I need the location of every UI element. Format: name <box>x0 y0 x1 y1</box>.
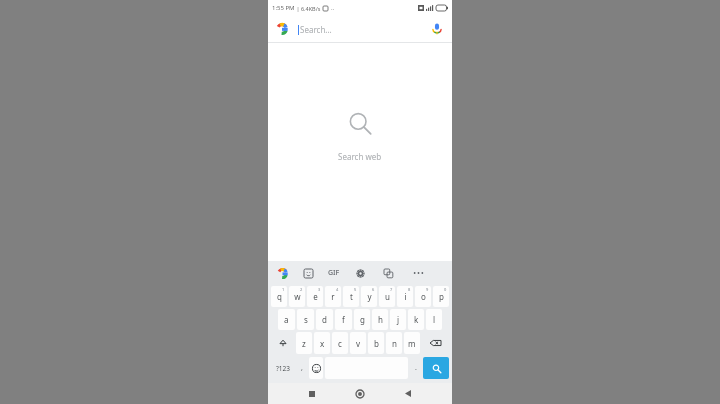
button[interactable]: t <box>343 286 359 307</box>
staticText: 2 <box>300 287 303 292</box>
button[interactable]: ?123 <box>270 356 295 380</box>
staticText: r <box>331 291 335 302</box>
button[interactable]: Settings <box>352 265 368 281</box>
staticText: Search web <box>338 151 382 162</box>
staticText: 6 <box>372 287 375 292</box>
button[interactable]: p <box>433 286 449 307</box>
staticText: 0 <box>444 287 447 292</box>
staticText: 8 <box>408 287 411 292</box>
staticText: GIF <box>328 268 340 278</box>
button[interactable]: Emoji <box>309 357 323 379</box>
staticText: Search... <box>300 24 332 35</box>
staticText: 9 <box>426 287 429 292</box>
button[interactable]: x <box>314 332 330 354</box>
button[interactable]: r <box>325 286 341 307</box>
staticText: 3 <box>318 287 321 292</box>
button[interactable]: b <box>368 332 384 354</box>
staticText: s <box>304 314 308 325</box>
button[interactable]: y <box>361 286 377 307</box>
button[interactable]: n <box>386 332 402 354</box>
staticText: m <box>408 338 416 349</box>
staticText: t <box>350 291 353 302</box>
staticText: 4 <box>336 287 339 292</box>
button[interactable]: k <box>408 309 424 330</box>
button[interactable]: j <box>390 309 406 330</box>
staticText: h <box>378 314 383 325</box>
button[interactable]: g <box>354 309 370 330</box>
button[interactable]: Voice search <box>429 21 445 37</box>
button[interactable]: o <box>415 286 431 307</box>
staticText: p <box>439 291 444 302</box>
staticText: d <box>322 314 327 325</box>
staticText: f <box>342 314 345 325</box>
button[interactable]: f <box>335 309 352 330</box>
staticText: e <box>313 291 318 302</box>
button[interactable]: Google <box>275 22 289 36</box>
button[interactable]: GIF <box>328 265 340 281</box>
button[interactable]: w <box>289 286 305 307</box>
staticText: 7 <box>390 287 393 292</box>
button[interactable]: Backspace <box>422 332 449 354</box>
staticText: v <box>356 338 361 349</box>
button[interactable]: h <box>372 309 388 330</box>
staticText: i <box>404 291 407 302</box>
button[interactable]: Shift <box>271 332 294 354</box>
button[interactable]: e <box>307 286 323 307</box>
button[interactable]: u <box>379 286 395 307</box>
button[interactable]: c <box>332 332 348 354</box>
button[interactable]: i <box>397 286 413 307</box>
staticText: .. <box>331 4 335 12</box>
button[interactable]: m <box>404 332 420 354</box>
staticText: z <box>302 338 306 349</box>
staticText: q <box>277 291 282 302</box>
staticText: 1 <box>282 287 285 292</box>
staticText: b <box>374 338 379 349</box>
staticText: | 6.4KB/s <box>295 5 321 12</box>
button[interactable]: q <box>271 286 287 307</box>
staticText: o <box>421 291 426 302</box>
button[interactable]: Home <box>349 383 371 404</box>
button[interactable]: s <box>297 309 314 330</box>
staticText: n <box>392 338 397 349</box>
button[interactable]: l <box>426 309 442 330</box>
staticText: l <box>433 314 436 325</box>
button[interactable]: z <box>296 332 312 354</box>
button[interactable]: , <box>295 356 308 380</box>
button[interactable]: a <box>278 309 295 330</box>
staticText: x <box>320 338 325 349</box>
button[interactable]: Recent apps <box>301 383 323 404</box>
staticText: ?123 <box>276 364 290 373</box>
button[interactable]: Translate <box>380 265 396 281</box>
staticText: a <box>284 314 289 325</box>
button[interactable]: v <box>350 332 366 354</box>
staticText: g <box>360 314 365 325</box>
staticText: k <box>414 314 419 325</box>
button[interactable]: Stickers <box>300 265 316 281</box>
staticText: . <box>415 363 417 373</box>
button[interactable]: Back <box>397 383 419 404</box>
button[interactable]: d <box>316 309 333 330</box>
staticText: , <box>301 363 303 373</box>
button[interactable]: More options <box>408 265 428 281</box>
staticText: c <box>338 338 342 349</box>
staticText: y <box>367 291 372 302</box>
button[interactable]: Search <box>423 357 449 379</box>
staticText: j <box>397 314 400 325</box>
staticText: 1:55 PM <box>272 4 295 12</box>
button[interactable]: . <box>409 356 422 380</box>
staticText: w <box>294 291 301 302</box>
staticText: 5 <box>354 287 357 292</box>
staticText: u <box>385 291 390 302</box>
button[interactable]: Google <box>274 265 290 281</box>
